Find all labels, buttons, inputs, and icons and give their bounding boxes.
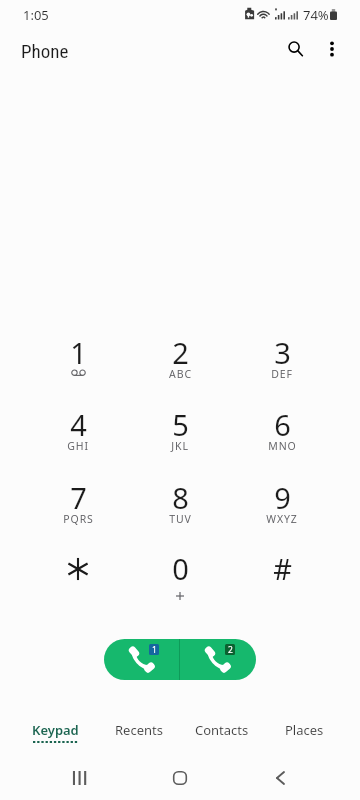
button[interactable] — [27, 542, 129, 614]
staticText: 7 — [70, 478, 87, 517]
button[interactable]: More options — [311, 30, 351, 70]
button[interactable]: 3 — [231, 326, 333, 398]
staticText: MNO — [268, 439, 297, 453]
staticText: 1 — [70, 333, 87, 372]
button[interactable]: Call with SIM 2 — [180, 639, 256, 680]
button[interactable]: 9 — [231, 471, 333, 543]
button[interactable]: Recents — [97, 714, 180, 748]
button[interactable]: 4 — [27, 398, 129, 470]
staticText: Places — [285, 721, 324, 739]
staticText: 74% — [303, 6, 329, 24]
button[interactable]: Recents — [65, 771, 93, 785]
staticText: 2 — [172, 333, 189, 372]
button[interactable]: Home — [166, 771, 194, 785]
staticText: 9 — [274, 478, 291, 517]
staticText: 0 — [172, 549, 189, 588]
staticText: Phone — [21, 40, 69, 62]
staticText: WXYZ — [266, 512, 298, 526]
button[interactable]: Search — [275, 30, 315, 70]
button[interactable]: 6 — [231, 398, 333, 470]
staticText: 3 — [274, 333, 291, 372]
staticText: 5 — [172, 405, 189, 444]
staticText: TUV — [169, 512, 192, 526]
button[interactable]: Contacts — [180, 714, 263, 748]
button[interactable]: 1 — [27, 326, 129, 398]
staticText: DEF — [271, 367, 293, 381]
button[interactable]: 8 — [129, 471, 231, 543]
button[interactable]: Keypad — [14, 714, 97, 748]
staticText: # — [273, 549, 292, 588]
staticText: 4 — [70, 405, 87, 444]
button[interactable]: Places — [263, 714, 346, 748]
staticText: Recents — [115, 721, 163, 739]
staticText: ABC — [169, 367, 192, 381]
button[interactable]: 0 — [129, 542, 231, 614]
button[interactable]: # — [231, 542, 333, 614]
button[interactable]: 2 — [129, 326, 231, 398]
button[interactable]: Call with SIM 1 — [104, 639, 179, 680]
staticText: 8 — [172, 478, 189, 517]
staticText: 1 — [152, 644, 157, 655]
button[interactable]: Back — [266, 771, 294, 785]
staticText: 6 — [274, 405, 291, 444]
staticText: GHI — [67, 439, 89, 453]
staticText: Contacts — [195, 721, 249, 739]
staticText: 1:05 — [23, 6, 49, 24]
staticText: PQRS — [63, 512, 94, 526]
staticText: 2 — [228, 644, 233, 655]
staticText: JKL — [171, 439, 189, 453]
button[interactable]: 5 — [129, 398, 231, 470]
staticText: Keypad — [32, 721, 79, 739]
button[interactable]: 7 — [27, 471, 129, 543]
